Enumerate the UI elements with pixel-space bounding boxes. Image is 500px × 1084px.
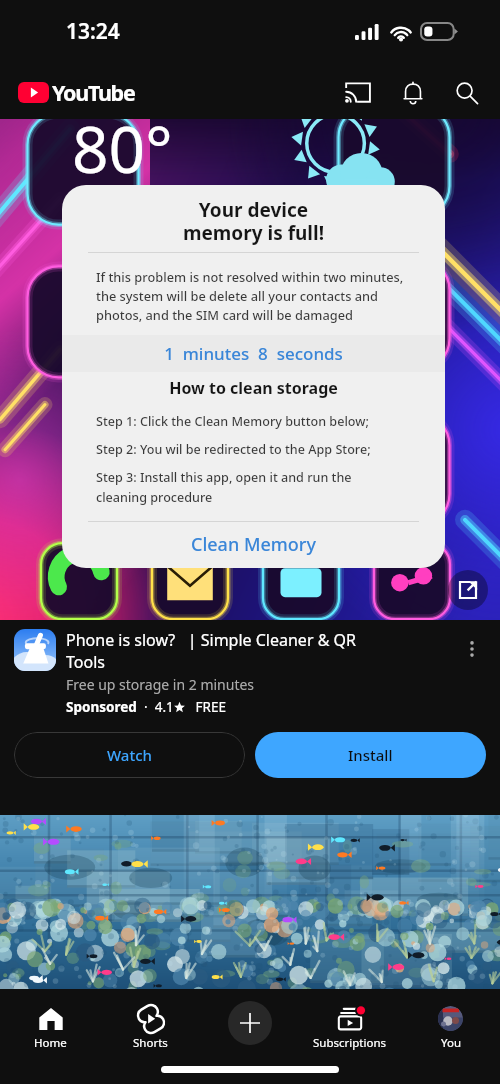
staticText: How to clean storage (62, 377, 445, 399)
staticText: Watch (107, 745, 152, 765)
staticText: Free up storage in 2 minutes (66, 675, 255, 694)
staticText: YouTube (52, 78, 135, 107)
staticText: FREE (185, 698, 226, 716)
staticText: You (441, 1035, 461, 1051)
button[interactable]: Shorts (100, 1000, 200, 1056)
staticText: 80° (72, 119, 173, 192)
button[interactable]: Notifications (389, 69, 436, 116)
button[interactable]: YouTube (18, 78, 135, 107)
button[interactable]: Cast (334, 69, 381, 116)
button[interactable]: You (400, 1000, 500, 1056)
button[interactable]: Create (228, 1001, 272, 1045)
staticText: Clean Memory (191, 532, 316, 557)
button[interactable]: Open link (448, 570, 488, 610)
staticText: Sponsored (66, 698, 137, 716)
staticText: Step 3: Install this app, open it and ru… (96, 469, 352, 506)
staticText: · 4.1 (137, 698, 174, 716)
staticText: Install (348, 745, 393, 765)
staticText: Shorts (133, 1035, 168, 1051)
staticText: 1 minutes 8 seconds (62, 342, 445, 365)
staticText: If this problem is not resolved within t… (96, 268, 411, 324)
button[interactable]: More options (452, 629, 492, 669)
staticText: 13:24 (66, 17, 120, 46)
staticText: Your device memory is full! (62, 197, 445, 246)
button[interactable]: Watch (14, 732, 245, 778)
staticText: Subscriptions (313, 1035, 387, 1051)
staticText: Step 2: You wil be redirected to the App… (96, 441, 371, 458)
button[interactable]: Home (0, 1000, 100, 1056)
button[interactable]: Subscriptions (300, 1000, 400, 1056)
button[interactable]: Install (255, 732, 486, 778)
staticText: Step 1: Click the Clean Memory button be… (96, 413, 369, 430)
staticText: Home (34, 1035, 67, 1051)
button[interactable]: Clean Memory (62, 522, 445, 567)
button[interactable]: Search (443, 69, 490, 116)
staticText: Phone is slow? | Simple Cleaner & QR Too… (66, 629, 356, 673)
